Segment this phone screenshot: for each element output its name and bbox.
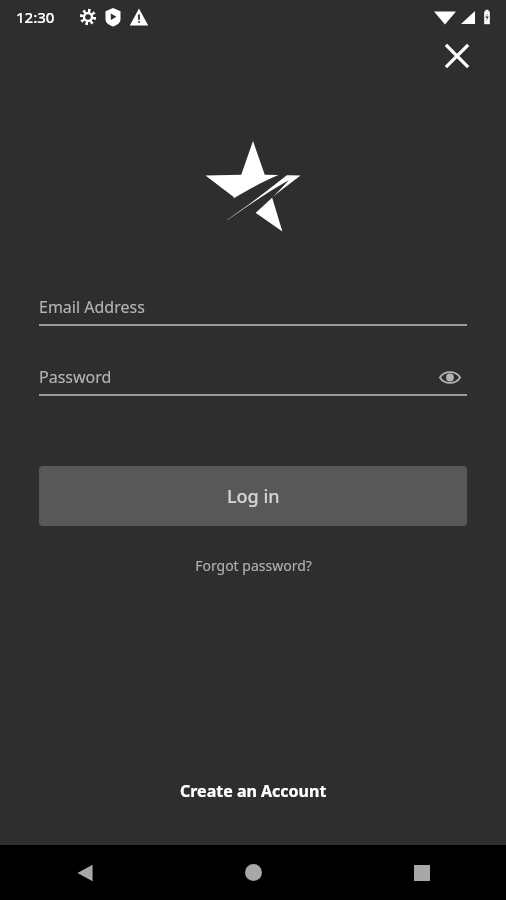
- staticText: 12:30: [16, 7, 55, 27]
- button[interactable]: Back: [0, 845, 169, 900]
- button[interactable]: Home: [169, 845, 338, 900]
- button[interactable]: Password: [39, 360, 467, 394]
- staticText: Create an Account: [180, 780, 327, 802]
- button[interactable]: Forgot password?: [185, 550, 322, 581]
- staticText: Password: [39, 366, 112, 388]
- button[interactable]: Close: [433, 32, 481, 80]
- button[interactable]: Log in: [39, 466, 467, 526]
- staticText: Forgot password?: [195, 556, 312, 575]
- button[interactable]: Show password: [433, 360, 467, 394]
- staticText: Email Address: [39, 296, 145, 318]
- button[interactable]: Recent apps: [338, 845, 506, 900]
- button[interactable]: Email Address: [39, 290, 467, 324]
- button[interactable]: Create an Account: [164, 772, 343, 810]
- staticText: Log in: [227, 484, 280, 509]
